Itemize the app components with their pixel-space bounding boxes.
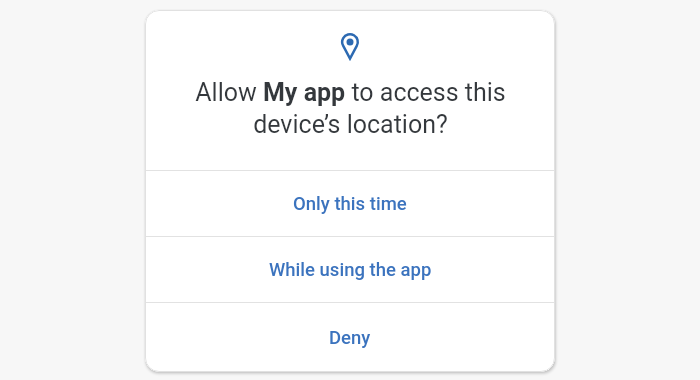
button[interactable]: Deny <box>145 303 555 372</box>
staticText: Deny <box>329 327 371 349</box>
button[interactable]: Only this time <box>145 171 555 236</box>
staticText: Only this time <box>293 193 407 215</box>
button[interactable]: While using the app <box>145 237 555 302</box>
staticText: Allow My app to access this device’s loc… <box>195 78 506 139</box>
staticText: While using the app <box>269 259 432 281</box>
